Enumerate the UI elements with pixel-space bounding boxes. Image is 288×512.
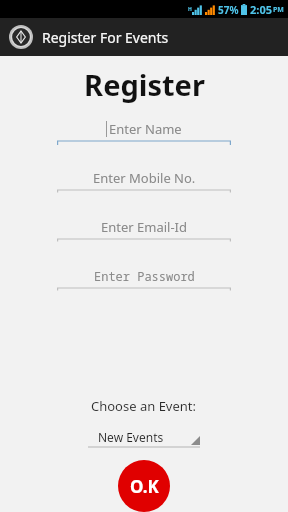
button[interactable]: Enter Mobile No. — [57, 167, 231, 195]
staticText: Enter Password — [94, 268, 195, 284]
staticText: New Events — [98, 429, 164, 445]
staticText: 57% — [218, 3, 239, 17]
button[interactable]: Enter Email-Id — [57, 216, 231, 244]
staticText: Enter Email-Id — [101, 218, 188, 236]
button[interactable]: New Events — [88, 426, 200, 448]
staticText: O.K — [130, 475, 159, 498]
staticText: PM — [273, 5, 284, 15]
button[interactable]: O.K — [118, 460, 170, 512]
staticText: 2:05 — [250, 2, 272, 17]
staticText: Enter Name — [109, 120, 182, 138]
staticText: Choose an Event: — [91, 397, 197, 415]
staticText: Enter Mobile No. — [93, 169, 196, 187]
button[interactable]: Enter Name — [57, 118, 231, 146]
staticText: Register — [84, 65, 205, 104]
button[interactable]: Enter Password — [57, 265, 231, 293]
other: App icon — [9, 25, 33, 49]
staticText: H — [188, 6, 192, 13]
staticText: Register For Events — [42, 28, 169, 47]
